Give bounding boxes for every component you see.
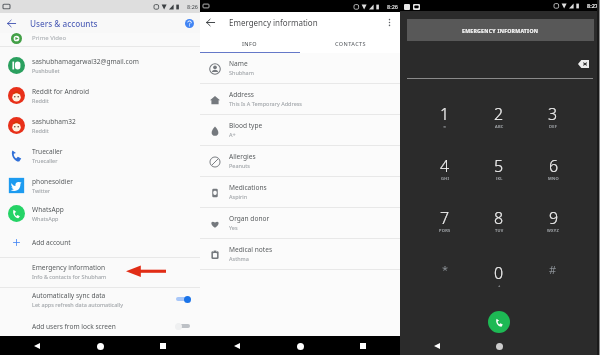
button[interactable]: 1 [423,103,467,129]
staticText: Reddit for Android [32,87,90,96]
button[interactable]: Call [488,311,510,333]
button[interactable]: # [531,262,575,288]
staticText: INFO [242,40,258,47]
staticText: Aspirin [229,193,248,200]
button[interactable]: Back [230,339,244,353]
staticText: Asthma [229,255,249,262]
button[interactable]: WhatsApp [0,198,200,228]
staticText: Peanuts [229,162,250,169]
staticText: WXYZ [547,228,560,232]
staticText: 6 [549,155,559,177]
button[interactable]: Help and feedback [179,13,199,33]
button[interactable]: Automatically sync data toggle [175,294,195,304]
staticText: EMERGENCY INFORMATION [462,27,539,34]
button[interactable]: More options [379,12,400,33]
staticText: Add users from lock screen [32,322,116,331]
staticText: A+ [229,131,236,138]
staticText: Prime Video [32,34,67,42]
button[interactable]: Organ donor [200,208,400,239]
staticText: 8 [494,207,504,229]
button[interactable]: Reddit for Android [0,80,200,110]
staticText: 8:26 [187,3,198,10]
staticText: 8:27 [587,2,598,9]
staticText: Organ donor [229,214,270,223]
button[interactable]: Recent apps [356,339,370,353]
staticText: GHI [441,176,450,180]
button[interactable]: Home [492,339,506,353]
button[interactable]: 6 [531,155,575,181]
button[interactable]: Home [93,339,107,353]
staticText: Reddit [32,97,49,104]
staticText: Reddit [32,127,49,134]
button[interactable]: Automatically sync data [0,289,200,316]
button[interactable]: CONTACTS [300,33,400,53]
button[interactable]: 7 [423,207,467,233]
staticText: CONTACTS [335,40,366,47]
staticText: sashubham32 [32,117,76,126]
staticText: Blood type [229,121,263,130]
staticText: TUV [495,228,504,232]
button[interactable]: * [423,262,467,288]
button[interactable]: 8 [477,207,521,233]
button[interactable]: Allergies [200,146,400,177]
staticText: Allergies [229,152,256,161]
staticText: sashubhamagarwal32@gmail.com [32,57,139,66]
button[interactable]: Medications [200,177,400,208]
staticText: ∞ [443,124,447,128]
staticText: PQRS [439,228,451,232]
button[interactable]: Blood type [200,115,400,146]
button[interactable]: 2 [477,103,521,129]
staticText: This Is A Temporary Address [229,100,303,107]
button[interactable]: Back [430,339,444,353]
staticText: # [549,262,557,277]
staticText: 7 [440,207,450,229]
staticText: DEF [549,124,558,128]
staticText: Add account [32,238,71,247]
button[interactable]: Home [293,339,307,353]
button[interactable]: sashubham32 [0,110,200,140]
staticText: + [498,283,501,287]
button[interactable]: Add account [0,230,200,254]
staticText: WhatsApp [32,205,64,214]
button[interactable]: Medical notes [200,239,400,270]
staticText: Medical notes [229,245,273,254]
staticText: 4 [440,155,450,177]
button[interactable]: Prime Video [0,30,200,46]
button[interactable]: phonesoldier [0,170,200,200]
button[interactable]: Navigate up [0,13,22,33]
button[interactable]: sashubhamagarwal32@gmail.com [0,50,200,80]
staticText: Twitter [32,187,51,194]
button[interactable]: Navigate up [200,12,221,33]
button[interactable]: Truecaller [0,140,200,170]
button[interactable]: Add users from lock screen [0,316,200,336]
staticText: 8:26 [387,3,398,10]
button[interactable]: Address [200,84,400,115]
button[interactable]: Add users from lock screen toggle [175,321,195,331]
button[interactable]: 9 [531,207,575,233]
button[interactable]: EMERGENCY INFORMATION [407,19,594,41]
staticText: MNO [548,176,559,180]
staticText: Pushbullet [32,67,60,74]
staticText: Emergency information [32,263,106,272]
staticText: JKL [496,176,503,180]
staticText: Users & accounts [30,18,98,29]
button[interactable]: Recent apps [156,339,170,353]
staticText: phonesoldier [32,177,73,186]
button[interactable]: Emergency information [0,261,200,287]
staticText: 0 [494,262,504,284]
button[interactable]: Backspace [575,57,591,70]
button[interactable]: Name [200,53,400,84]
staticText: Yes [229,224,238,231]
button[interactable]: INFO [200,33,300,53]
staticText: Automatically sync data [32,291,106,300]
button[interactable]: 0 [477,262,521,288]
button[interactable]: 3 [531,103,575,129]
staticText: 1 [440,103,450,125]
button[interactable]: 4 [423,155,467,181]
staticText: ABC [495,124,504,128]
staticText: 3 [548,103,558,125]
staticText: Emergency information [229,17,318,28]
button[interactable]: 5 [477,155,521,181]
button[interactable]: Back [30,339,44,353]
staticText: * [442,262,449,277]
